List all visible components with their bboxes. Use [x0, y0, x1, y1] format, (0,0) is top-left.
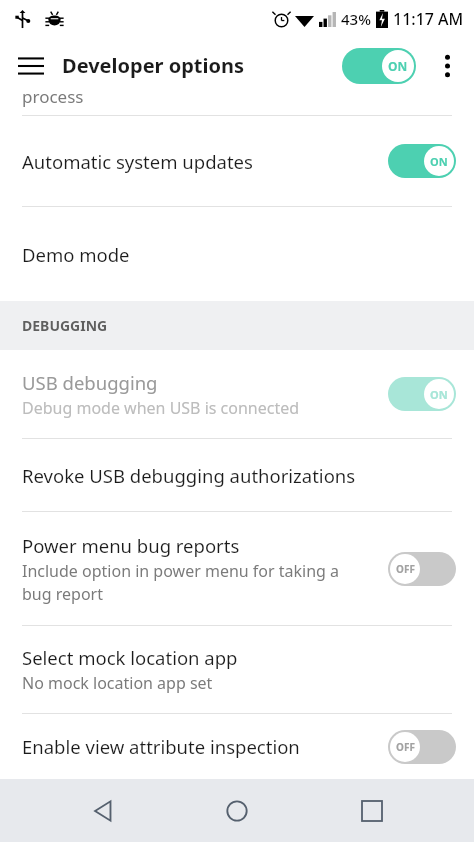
staticText: No mock location app set [22, 672, 213, 694]
staticText: OFF [396, 562, 415, 576]
staticText: Demo mode [22, 242, 130, 267]
staticText: ON [430, 154, 448, 169]
staticText: OFF [396, 740, 415, 754]
button[interactable]: Toggle automatic system updates [388, 144, 456, 178]
button[interactable]: Enable view attribute inspection [388, 730, 456, 764]
button[interactable]: USB debugging [0, 350, 474, 438]
button[interactable]: Enable view attribute inspection [0, 714, 474, 779]
staticText: Automatic system updates [22, 149, 253, 174]
button[interactable]: Back [71, 779, 135, 842]
staticText: Select mock location app [22, 645, 238, 670]
button[interactable]: Navigation menu [8, 43, 54, 89]
staticText: USB debugging [22, 370, 158, 395]
button[interactable]: USB debugging [388, 377, 456, 411]
staticText: 43% [341, 9, 371, 29]
staticText: Power menu bug reports [22, 533, 240, 558]
button[interactable]: Demo mode [0, 207, 474, 301]
staticText: ON [430, 387, 448, 402]
staticText: Revoke USB debugging authorizations [22, 463, 356, 488]
staticText: ON [388, 58, 408, 74]
button[interactable]: Home [205, 779, 269, 842]
button[interactable]: Automatic system updates [0, 116, 474, 206]
button[interactable]: Select mock location app [0, 626, 474, 713]
button[interactable]: More options [424, 43, 470, 89]
staticText: DEBUGGING [22, 316, 108, 335]
button[interactable]: Power menu bug reports [0, 512, 474, 625]
button[interactable]: Revoke USB debugging authorizations [0, 439, 474, 511]
staticText: Include option in power menu for taking … [22, 560, 340, 605]
button[interactable]: Toggle developer options [342, 48, 416, 84]
staticText: Developer options [62, 52, 245, 79]
staticText: Debug mode when USB is connected [22, 397, 300, 419]
button[interactable]: Power menu bug reports [388, 552, 456, 586]
staticText: process [22, 85, 84, 107]
staticText: Enable view attribute inspection [22, 734, 300, 759]
button[interactable]: Recent apps [340, 779, 404, 842]
staticText: 11:17 AM [393, 8, 464, 30]
